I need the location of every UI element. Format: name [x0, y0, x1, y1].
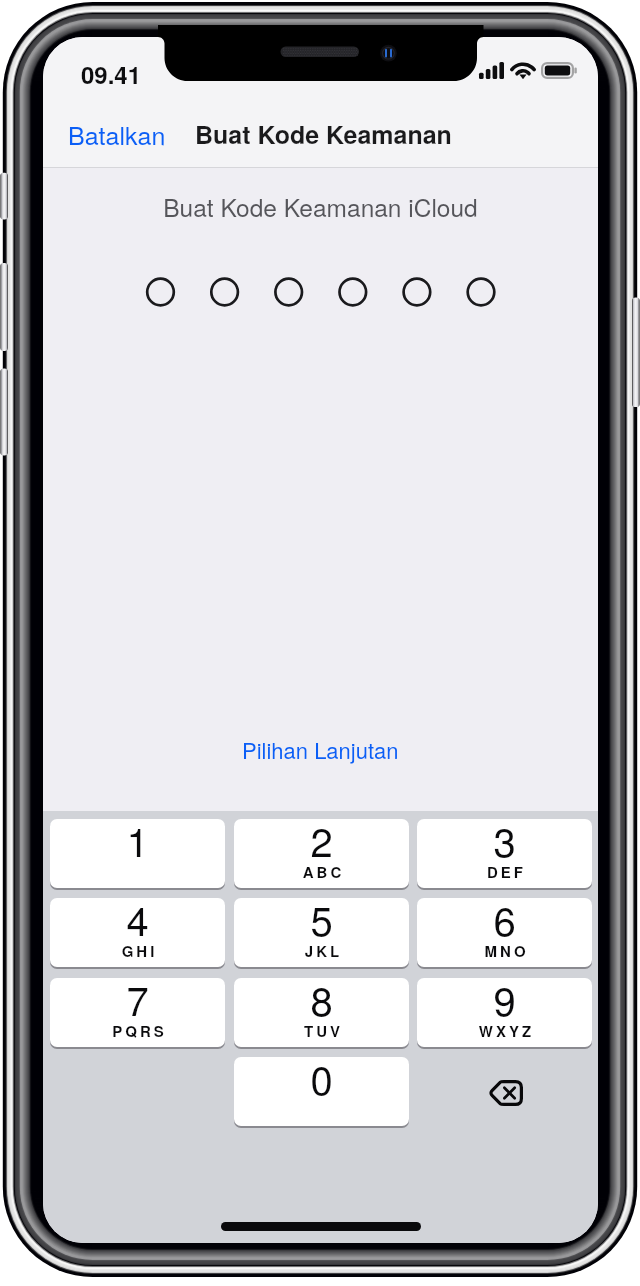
- staticText: 4: [50, 898, 225, 947]
- staticText: MNO: [419, 940, 592, 961]
- button[interactable]: 4: [50, 898, 225, 967]
- staticText: Batalkan: [68, 116, 166, 152]
- staticText: 9: [417, 978, 592, 1027]
- button[interactable]: Backspace: [475, 1068, 535, 1118]
- button[interactable]: 9: [417, 978, 592, 1047]
- button[interactable]: 1: [50, 819, 225, 888]
- button[interactable]: 8: [234, 978, 409, 1047]
- button[interactable]: 5: [234, 898, 409, 967]
- staticText: Pilihan Lanjutan: [242, 734, 399, 766]
- staticText: 09.41: [81, 57, 142, 91]
- staticText: 2: [234, 819, 409, 868]
- staticText: WXYZ: [419, 1020, 592, 1041]
- staticText: Buat Kode Keamanan iCloud: [43, 189, 598, 224]
- staticText: 7: [50, 978, 225, 1027]
- staticText: Buat Kode Keamanan: [195, 116, 452, 152]
- button[interactable]: 6: [417, 898, 592, 967]
- staticText: TUV: [236, 1020, 409, 1041]
- staticText: GHI: [52, 940, 225, 961]
- staticText: 0: [234, 1057, 409, 1106]
- button[interactable]: 0: [234, 1057, 409, 1126]
- staticText: 1: [50, 819, 225, 868]
- staticText: 6: [417, 898, 592, 947]
- button[interactable]: 2: [234, 819, 409, 888]
- staticText: 5: [234, 898, 409, 947]
- staticText: ABC: [236, 861, 409, 882]
- button[interactable]: Pilihan Lanjutan: [226, 728, 415, 772]
- button[interactable]: 3: [417, 819, 592, 888]
- staticText: DEF: [419, 861, 592, 882]
- staticText: JKL: [236, 940, 409, 961]
- button[interactable]: Batalkan: [43, 104, 191, 164]
- staticText: 3: [417, 819, 592, 868]
- staticText: 8: [234, 978, 409, 1027]
- staticText: PQRS: [52, 1020, 225, 1041]
- button[interactable]: 7: [50, 978, 225, 1047]
